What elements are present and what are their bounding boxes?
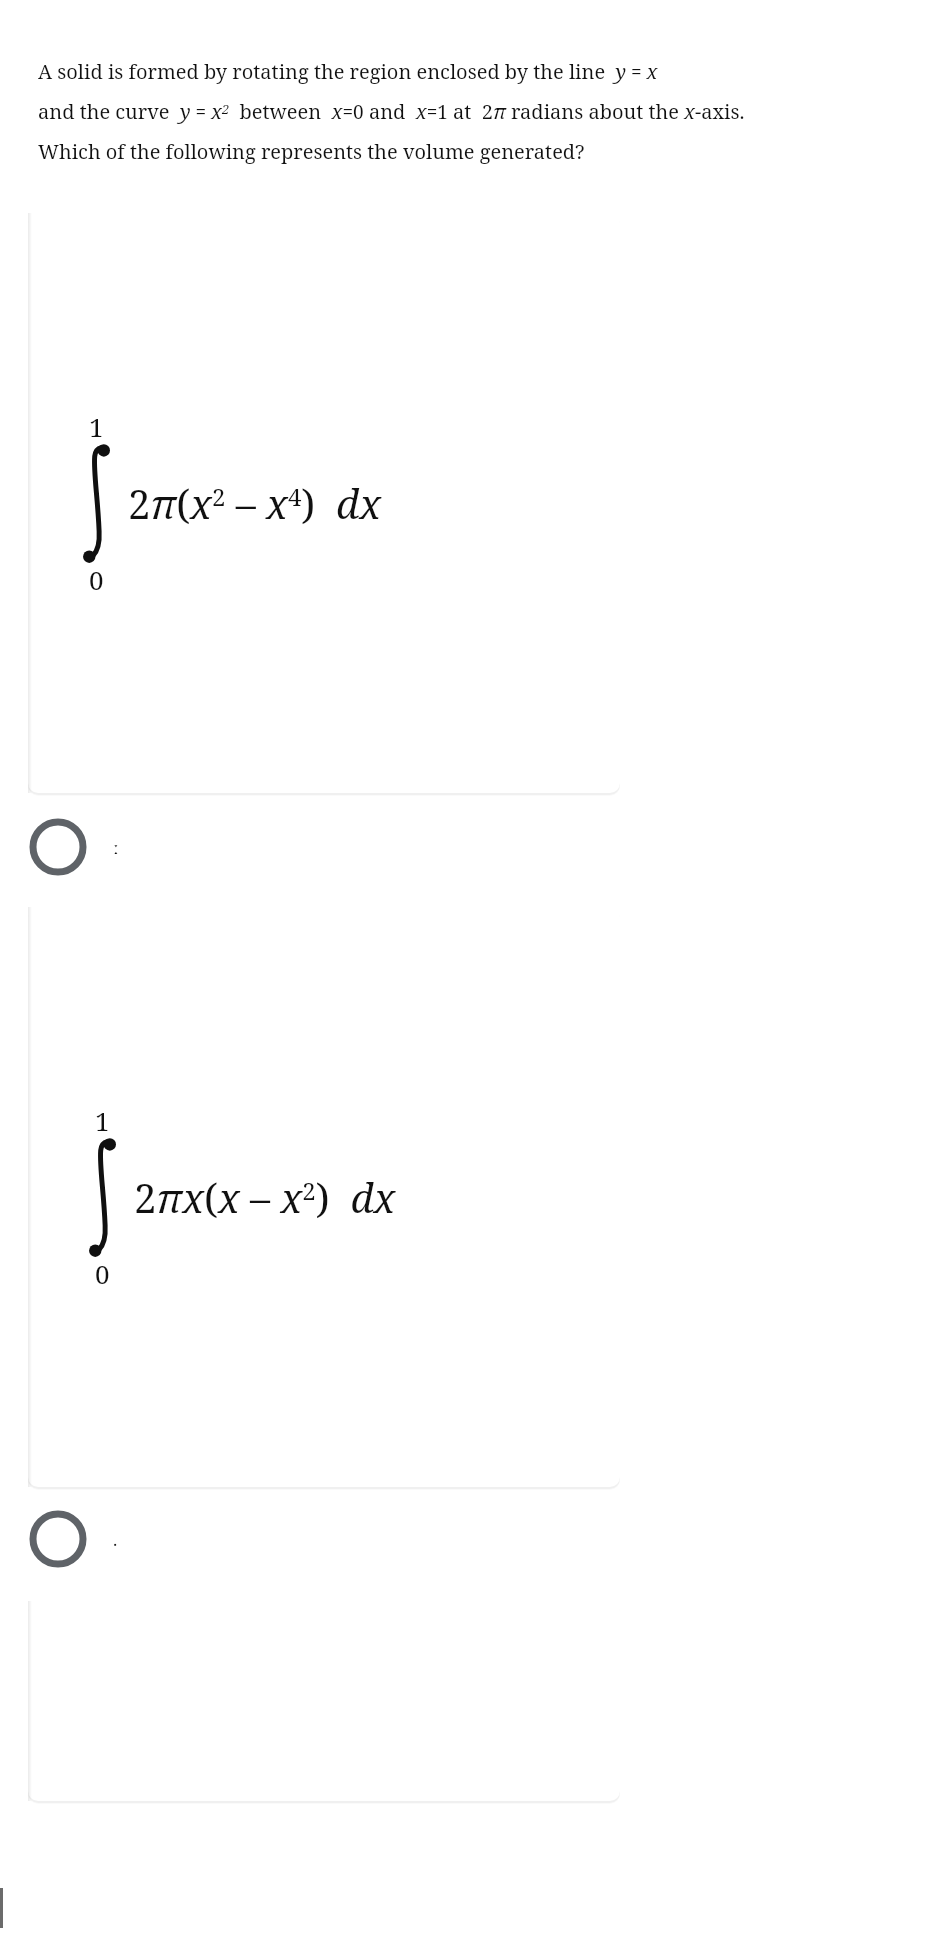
staticText: A solid is formed by rotating the region… [38,58,658,85]
staticText: ː [113,836,119,859]
button[interactable]: ː [0,815,930,879]
staticText: . [113,1528,118,1551]
staticText: 2πx(x – x2) dx [134,1170,396,1224]
staticText: 1 [95,1103,110,1138]
staticText: 0 [89,562,104,597]
staticText: Which of the following represents the vo… [38,138,585,165]
button[interactable]: . [0,1507,930,1571]
button[interactable]: 1 [28,213,620,793]
staticText: 0 [95,1256,110,1291]
staticText: and the curve y = x2 between x=0 and x=1… [38,98,745,125]
staticText: 2π(x2 – x4) dx [128,476,381,530]
button[interactable]: 1 [28,907,620,1487]
staticText: 1 [89,409,104,444]
